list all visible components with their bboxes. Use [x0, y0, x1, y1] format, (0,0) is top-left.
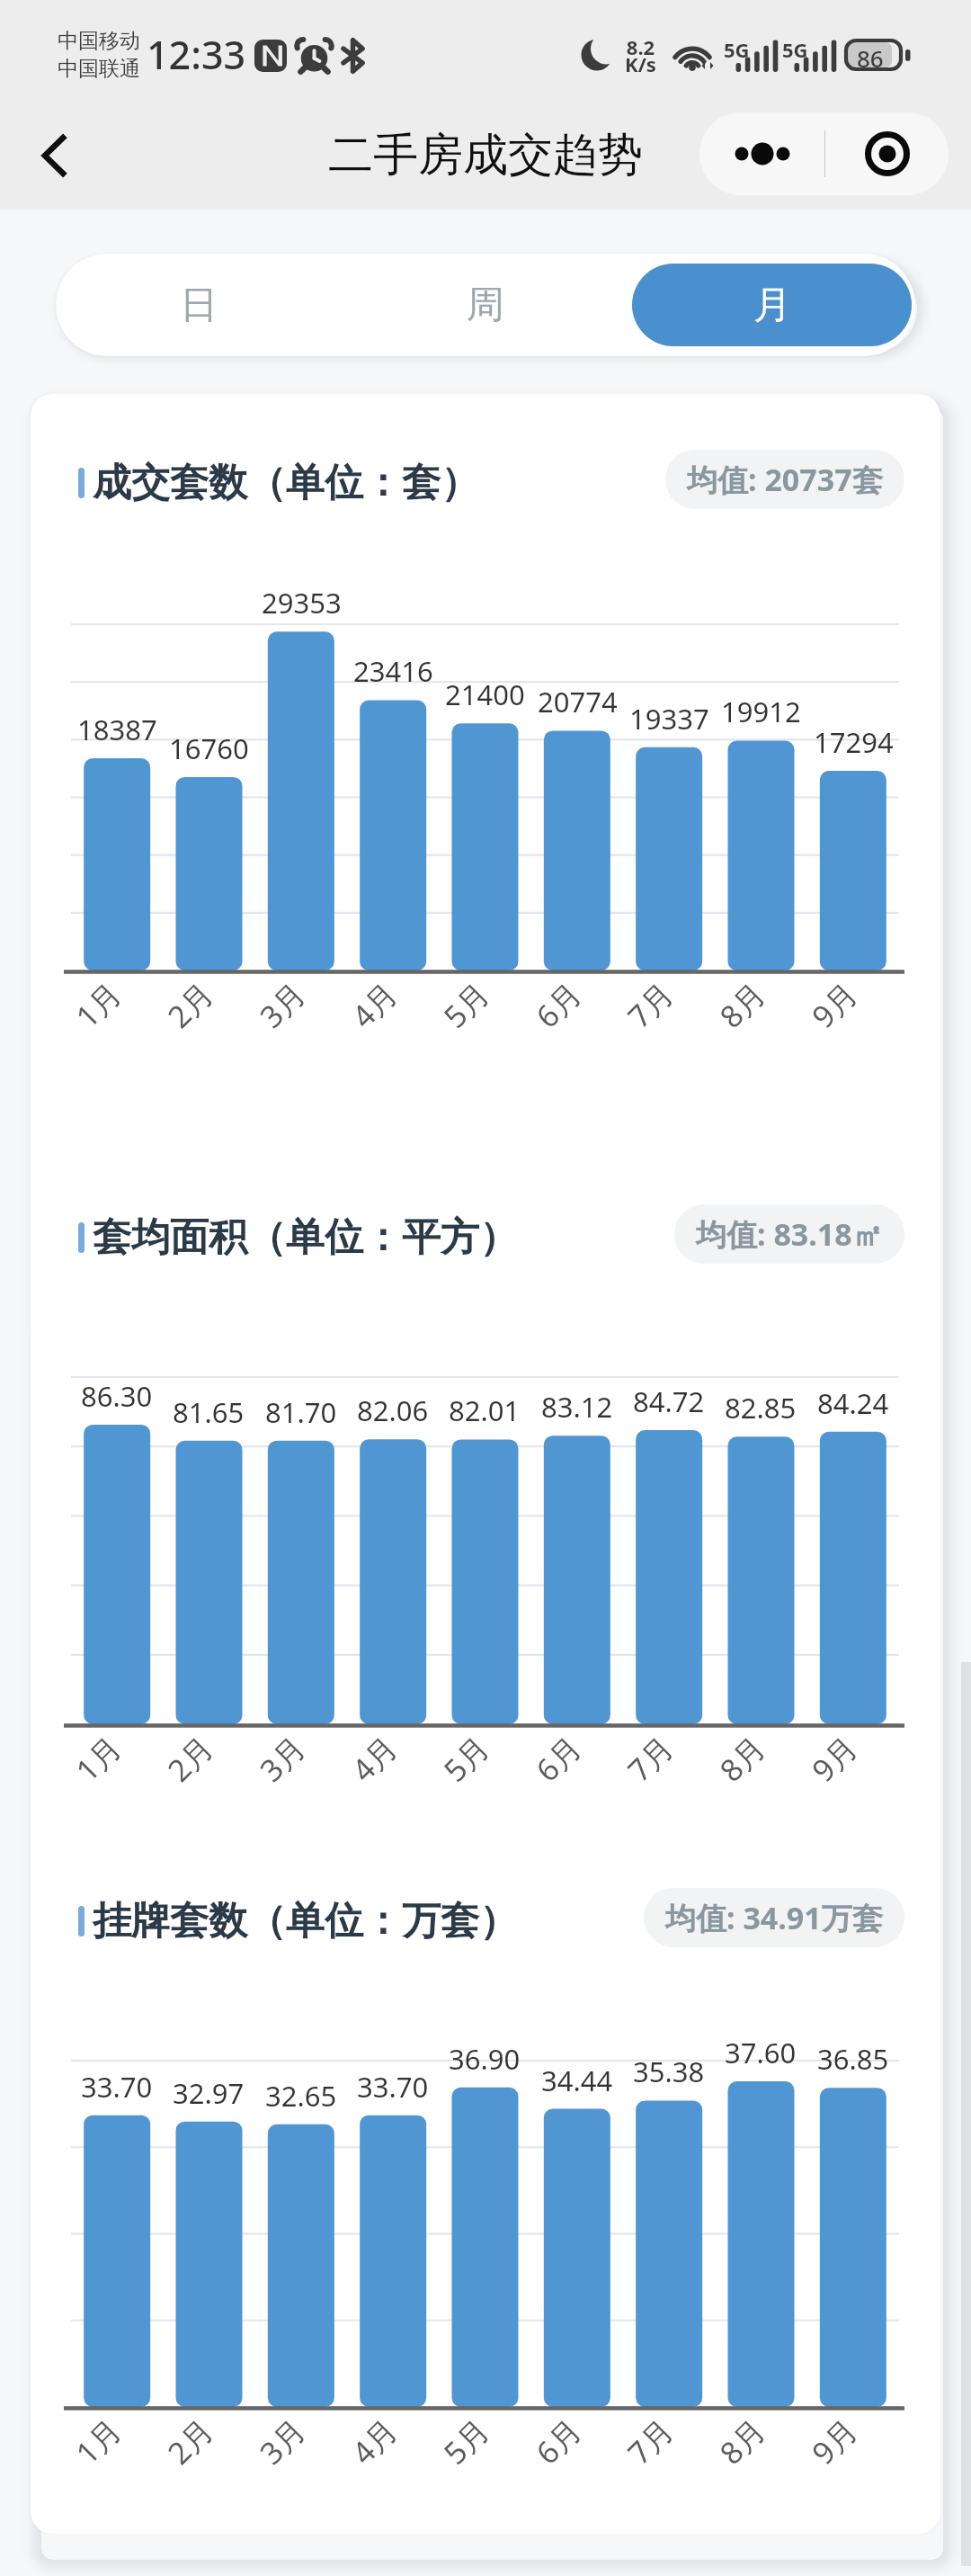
staticText: 36.90: [449, 2040, 521, 2078]
staticText: 5G: [724, 36, 750, 63]
button[interactable]: More options: [699, 112, 824, 195]
staticText: 20774: [538, 683, 618, 720]
staticText: 83.12: [541, 1388, 613, 1426]
staticText: 34.44: [541, 2062, 613, 2099]
staticText: 均值: 83.18㎡: [696, 1213, 883, 1255]
staticText: 84.72: [633, 1382, 705, 1420]
staticText: 35.38: [633, 2053, 705, 2090]
staticText: 日: [180, 282, 218, 329]
staticText: 8.2 K/s: [625, 33, 656, 77]
staticText: 32.97: [173, 2074, 245, 2112]
staticText: 17294: [814, 723, 894, 761]
staticText: 82.06: [357, 1391, 429, 1429]
staticText: 月: [753, 282, 791, 329]
staticText: 23416: [353, 652, 433, 690]
staticText: 36.85: [817, 2040, 889, 2078]
staticText: 33.70: [357, 2068, 429, 2106]
staticText: 16760: [169, 729, 249, 767]
staticText: 套均面积（单位：平方）: [93, 1213, 518, 1262]
staticText: 19912: [721, 693, 801, 730]
staticText: 32.65: [265, 2077, 337, 2115]
staticText: 29353: [262, 584, 342, 622]
button[interactable]: Close mini program: [825, 112, 949, 195]
staticText: 挂牌套数（单位：万套）: [93, 1897, 518, 1945]
staticText: 二手房成交趋势: [328, 127, 643, 183]
button[interactable]: 日: [59, 264, 338, 346]
staticText: 均值: 34.91万套: [665, 1897, 883, 1938]
staticText: 18387: [77, 711, 157, 748]
staticText: 5G: [782, 36, 808, 63]
button[interactable]: Back: [22, 123, 86, 188]
staticText: 成交套数（单位：套）: [93, 459, 479, 507]
staticText: 86: [857, 42, 884, 74]
button[interactable]: 周: [345, 264, 625, 346]
button[interactable]: 月: [632, 264, 912, 346]
staticText: 84.24: [817, 1384, 889, 1422]
staticText: 81.65: [173, 1393, 245, 1431]
staticText: 12:33: [147, 28, 246, 81]
staticText: 周: [467, 282, 504, 329]
staticText: 81.70: [265, 1393, 337, 1431]
staticText: 86.30: [81, 1377, 153, 1415]
staticText: 中国移动 中国联通: [58, 28, 140, 82]
staticText: 33.70: [81, 2068, 153, 2106]
staticText: 21400: [445, 675, 525, 713]
staticText: 37.60: [725, 2034, 797, 2071]
staticText: 82.01: [449, 1391, 521, 1429]
staticText: 均值: 20737套: [687, 459, 883, 500]
staticText: 82.85: [725, 1389, 797, 1427]
staticText: 19337: [629, 700, 709, 738]
